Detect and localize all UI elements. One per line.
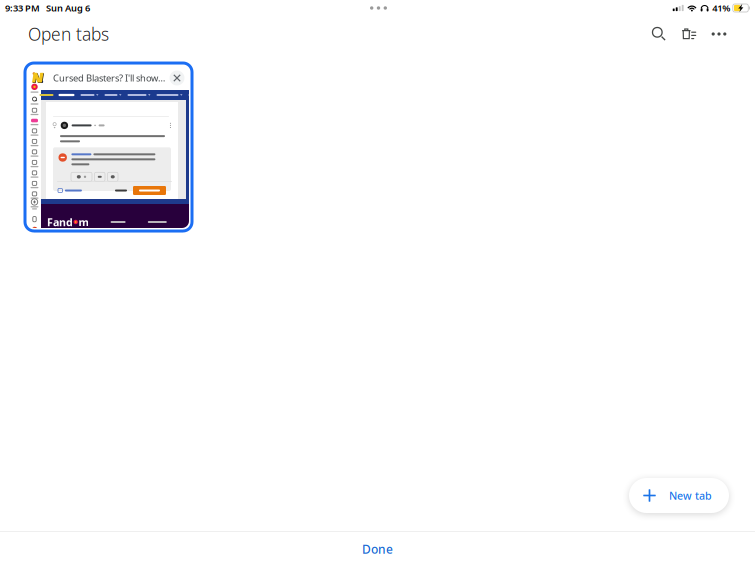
staticText: 41% (712, 2, 730, 14)
staticText: Fand (47, 215, 73, 229)
button[interactable]: Close all tabs (674, 17, 704, 51)
button[interactable]: Done (0, 532, 755, 566)
staticText: Open tabs (28, 22, 109, 45)
staticText: Done (362, 541, 393, 557)
staticText: Cursed Blasters? I'll show… (53, 72, 165, 84)
staticText: 9:33 PM (5, 2, 40, 14)
button[interactable]: Search tabs (644, 17, 674, 51)
staticText: New tab (669, 488, 712, 503)
button[interactable]: More options (704, 17, 734, 51)
button[interactable]: Close tab (167, 67, 187, 89)
button[interactable]: New tab (629, 478, 729, 513)
staticText: m (78, 215, 88, 229)
button[interactable]: Cursed Blasters? I'll show… (25, 63, 192, 231)
staticText: Sun Aug 6 (46, 2, 90, 14)
